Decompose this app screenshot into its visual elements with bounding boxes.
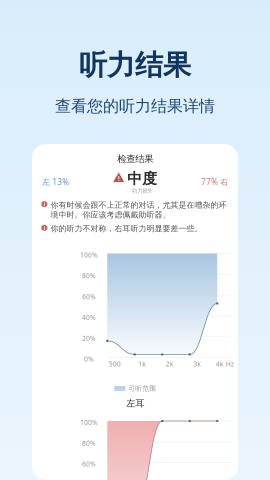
staticText: 80%	[82, 271, 96, 280]
staticText: 查看您的听力结果详情	[55, 96, 215, 116]
staticText: 60%	[82, 460, 96, 468]
staticText: 检查结果	[117, 153, 153, 164]
staticText: 0%	[84, 355, 94, 363]
staticText: 你的听力不对称，右耳听力明显要差一些。	[50, 224, 202, 233]
staticText: 80%	[82, 439, 96, 448]
staticText: 左 13%	[42, 176, 69, 187]
staticText: 听力损失	[132, 187, 152, 194]
staticText: 可听范围	[128, 384, 156, 393]
staticText: 3k	[193, 360, 201, 368]
staticText: 中度	[127, 169, 157, 187]
staticText: 77% 右	[201, 176, 228, 187]
staticText: 听力结果	[79, 48, 191, 82]
staticText: 4k Hz	[216, 360, 234, 368]
staticText: 40%	[82, 313, 96, 322]
staticText: 左耳	[126, 397, 144, 409]
staticText: 100%	[80, 418, 98, 427]
staticText: 500	[109, 360, 121, 368]
staticText: 1k	[138, 360, 146, 368]
staticText: 60%	[82, 292, 96, 301]
staticText: 你有时候会跟不上正常的对话，尤其是在嘈杂的环境中时。你应该考虑佩戴助听器。	[50, 200, 226, 220]
staticText: 20%	[82, 334, 96, 343]
staticText: 100%	[80, 251, 98, 259]
staticText: 2k	[166, 360, 174, 368]
